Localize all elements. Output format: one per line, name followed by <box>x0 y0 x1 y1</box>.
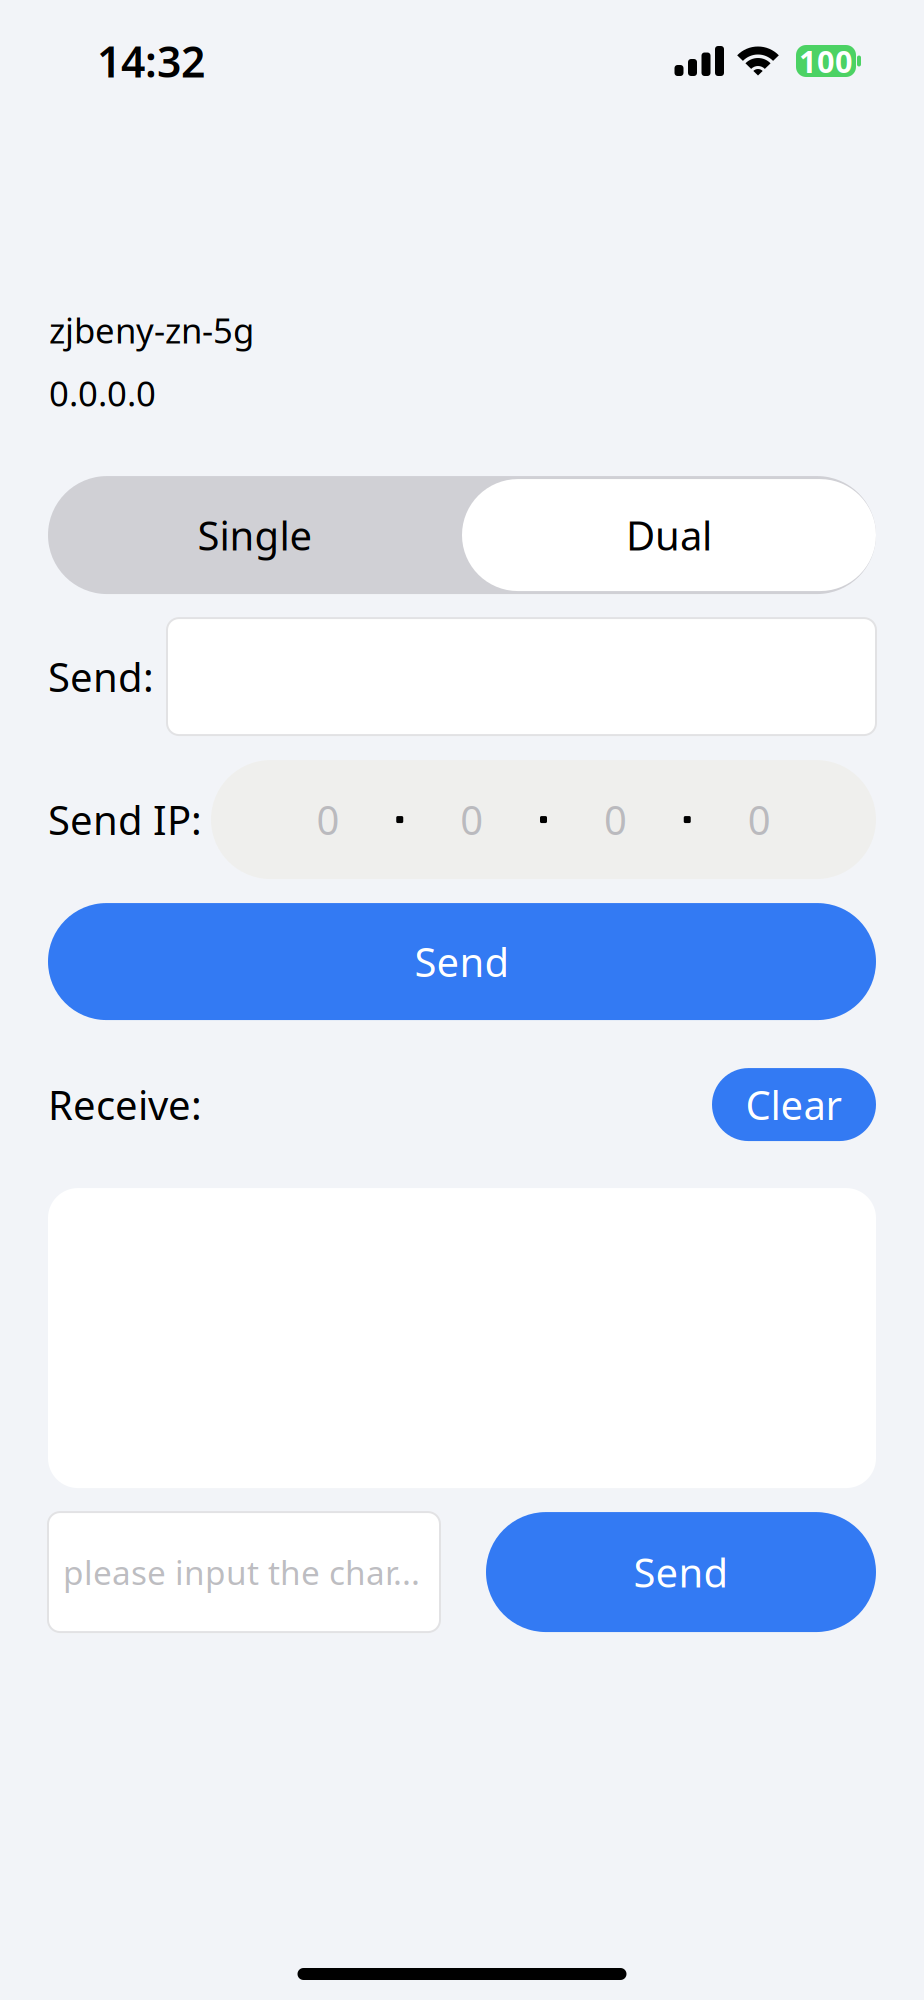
staticText: 100 <box>799 41 853 81</box>
staticText: Single <box>197 508 312 562</box>
button[interactable]: Dual <box>462 476 876 594</box>
staticText: zjbeny-zn-5g <box>49 307 254 353</box>
staticText: Receive: <box>48 1078 202 1131</box>
button[interactable]: please input the char... <box>48 1512 440 1632</box>
button[interactable]: Send text field <box>167 618 876 735</box>
staticText: 0.0.0.0 <box>49 370 156 416</box>
staticText: Send <box>414 935 509 988</box>
button[interactable]: Send IP address field <box>211 760 876 879</box>
button[interactable]: Send <box>48 903 876 1020</box>
staticText: Send: <box>48 650 154 703</box>
staticText: 0 <box>460 793 483 846</box>
staticText: 14:32 <box>97 33 205 89</box>
staticText: 0 <box>316 793 339 846</box>
button[interactable]: Clear <box>712 1068 876 1141</box>
staticText: Send <box>633 1545 728 1599</box>
staticText: 0 <box>748 793 771 846</box>
staticText: Dual <box>626 508 712 562</box>
staticText: 0 <box>604 793 627 846</box>
button[interactable]: Send <box>486 1512 876 1632</box>
button[interactable]: Single <box>48 476 462 594</box>
staticText: Clear <box>745 1078 842 1131</box>
staticText: Send IP: <box>48 793 202 846</box>
staticText: please input the char... <box>63 1550 420 1594</box>
